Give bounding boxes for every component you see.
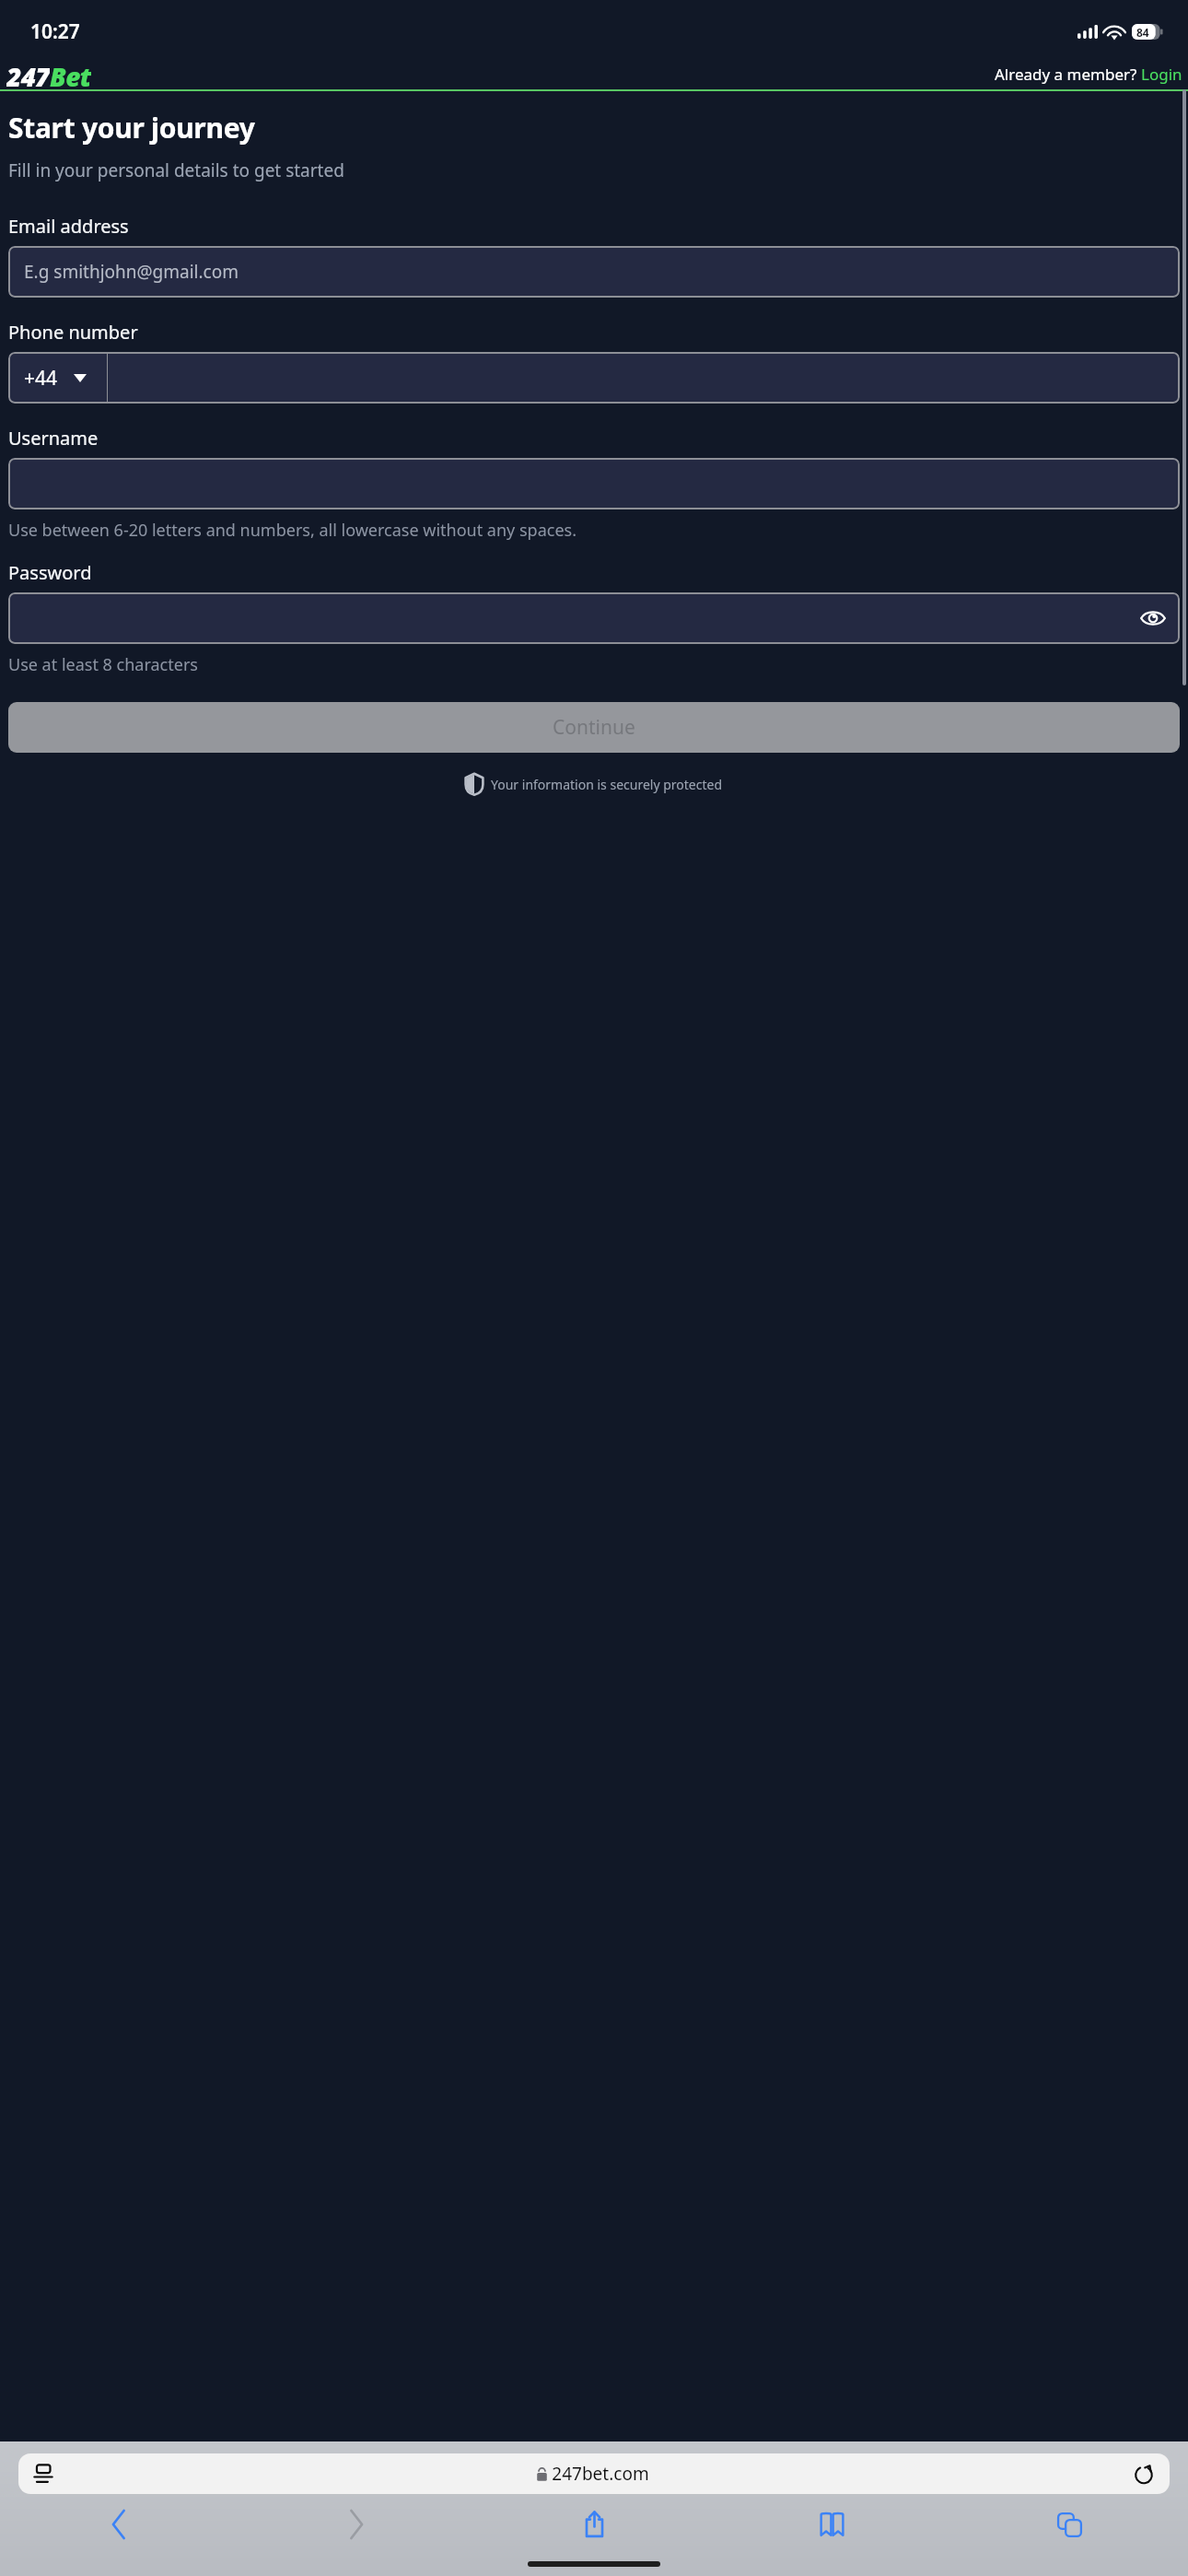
staticText: 247bet.com [552,2462,649,2486]
button[interactable]: Share [475,2507,713,2542]
staticText: Username [8,426,99,451]
button[interactable] [8,458,1180,509]
staticText: Phone number [8,320,138,345]
staticText: Password [8,560,92,585]
staticText: 10:27 [30,18,80,45]
button[interactable]: Reload [1131,2461,1157,2487]
button[interactable]: Continue [8,702,1180,753]
button[interactable]: Page settings [31,2462,55,2486]
staticText: Use between 6-20 letters and numbers, al… [8,519,577,542]
staticText: 247 [6,59,50,89]
staticText: Your information is securely protected [491,776,723,793]
staticText: Login [1141,64,1182,85]
button[interactable] [108,352,1180,404]
staticText: Continue [553,714,635,741]
other: Select country code [74,374,87,382]
button[interactable]: Forward [238,2507,475,2542]
button[interactable]: 247 [6,59,91,89]
staticText: Start your journey [8,109,255,146]
button[interactable]: Bookmarks [713,2507,950,2542]
button[interactable]: Already a member? [995,64,1182,85]
button[interactable] [8,592,1180,644]
staticText: +44 [24,365,58,392]
staticText: 84 [1136,25,1149,40]
staticText: Use at least 8 characters [8,653,198,676]
staticText: Email address [8,214,129,239]
button[interactable]: +44 [8,352,107,404]
staticText: Fill in your personal details to get sta… [8,158,344,182]
button[interactable]: E.g smithjohn@gmail.com [8,246,1180,298]
button[interactable]: Tabs [950,2507,1188,2542]
button[interactable]: Back [0,2507,238,2542]
staticText: Already a member? [995,64,1141,85]
button[interactable]: Page settings [18,2453,1170,2494]
button[interactable]: Show password [1133,598,1173,638]
staticText: E.g smithjohn@gmail.com [24,260,239,284]
staticText: Bet [50,59,91,89]
